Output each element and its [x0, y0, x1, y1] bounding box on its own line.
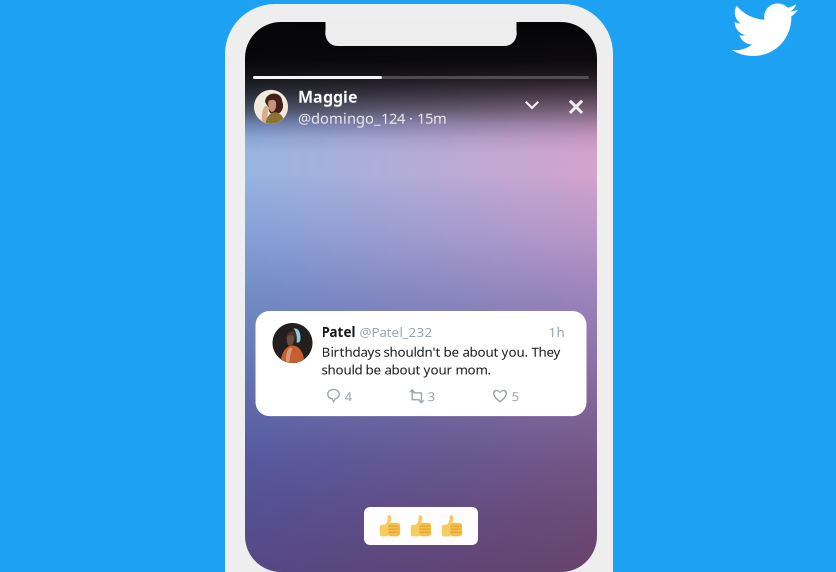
staticText: 3 [427, 387, 435, 405]
staticText: @Patel_232 [359, 323, 432, 341]
staticText: Birthdays shouldn't be about you. They s… [321, 343, 560, 378]
staticText: Patel [321, 323, 355, 341]
button[interactable]: Quick reactions [364, 507, 478, 545]
button[interactable]: Reply [326, 387, 380, 405]
staticText: @domingo_124 · 15m [298, 108, 447, 128]
staticText: 4 [344, 387, 352, 405]
staticText: Maggie [298, 86, 358, 107]
button[interactable]: Like [492, 387, 546, 405]
button[interactable]: Close fleet [562, 93, 590, 121]
button[interactable]: Retweet [408, 387, 462, 405]
staticText: 5 [511, 387, 519, 405]
button[interactable]: More [518, 93, 546, 121]
staticText: 1h [548, 323, 564, 341]
